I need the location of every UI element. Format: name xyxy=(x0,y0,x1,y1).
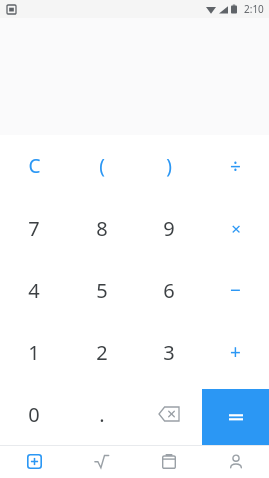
staticText: 8 xyxy=(96,215,108,242)
button[interactable]: 6 xyxy=(135,259,202,321)
staticText: ÷ xyxy=(230,153,241,179)
button[interactable]: 5 xyxy=(68,259,135,321)
staticText: 4 xyxy=(28,277,40,304)
staticText: + xyxy=(230,339,241,365)
button[interactable]: 8 xyxy=(68,197,135,259)
staticText: C xyxy=(28,153,41,179)
button[interactable]: 7 xyxy=(0,197,68,259)
button[interactable]: Calculator xyxy=(0,445,68,478)
button[interactable]: 0 xyxy=(0,383,68,445)
staticText: × xyxy=(231,217,241,240)
button[interactable]: ( xyxy=(68,135,135,197)
staticText: . xyxy=(99,401,105,428)
button[interactable]: 3 xyxy=(135,321,202,383)
button[interactable]: − xyxy=(202,259,269,321)
staticText: ) xyxy=(166,153,172,179)
button[interactable]: . xyxy=(68,383,135,445)
staticText: 2:10 xyxy=(244,2,264,16)
button[interactable]: ÷ xyxy=(202,135,269,197)
button[interactable]: History xyxy=(135,445,202,478)
staticText: 2 xyxy=(96,339,108,366)
staticText: 6 xyxy=(163,277,175,304)
button[interactable]: Backspace xyxy=(135,383,202,445)
staticText: 0 xyxy=(28,401,40,428)
button[interactable]: ) xyxy=(135,135,202,197)
staticText: 7 xyxy=(28,215,40,242)
staticText: ( xyxy=(99,153,105,179)
button[interactable] xyxy=(202,389,269,445)
staticText: 5 xyxy=(96,277,108,304)
button[interactable]: Profile xyxy=(202,445,269,478)
button[interactable]: 4 xyxy=(0,259,68,321)
staticText: − xyxy=(230,277,241,303)
button[interactable]: Functions xyxy=(68,445,135,478)
button[interactable]: C xyxy=(0,135,68,197)
button[interactable]: 1 xyxy=(0,321,68,383)
button[interactable]: 2 xyxy=(68,321,135,383)
button[interactable]: 9 xyxy=(135,197,202,259)
staticText: 9 xyxy=(163,215,175,242)
button[interactable]: + xyxy=(202,321,269,383)
button[interactable]: × xyxy=(202,197,269,259)
staticText: 3 xyxy=(163,339,175,366)
staticText: 1 xyxy=(28,339,40,366)
